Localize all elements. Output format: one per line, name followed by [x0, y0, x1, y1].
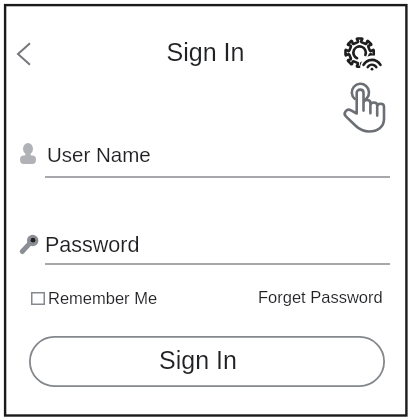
staticText: Sign In: [0, 38, 411, 66]
button[interactable]: Back: [12, 40, 40, 68]
button[interactable]: Settings: [344, 36, 394, 86]
button[interactable]: Forget Password: [258, 288, 383, 306]
staticText: Remember Me: [48, 289, 158, 307]
staticText: User Name: [47, 143, 151, 166]
button[interactable]: Remember Me: [31, 288, 158, 308]
button[interactable]: Sign In: [29, 336, 385, 387]
staticText: Sign In: [159, 346, 237, 374]
staticText: Password: [45, 233, 140, 257]
